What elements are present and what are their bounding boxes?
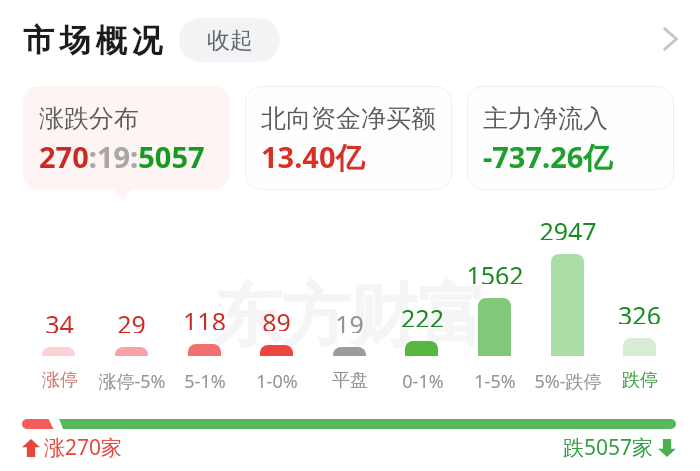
staticText: 2947: [539, 214, 597, 240]
staticText: 270:19:5057: [39, 137, 205, 176]
staticText: 涨停: [42, 369, 78, 392]
staticText: 1562: [466, 258, 524, 284]
button[interactable]: 收起: [179, 18, 280, 62]
staticText: 34: [45, 307, 74, 333]
staticText: 北向资金净买额: [261, 103, 436, 134]
staticText: 222: [401, 301, 444, 327]
button[interactable]: More: [649, 15, 691, 63]
staticText: 主力净流入: [483, 103, 608, 134]
staticText: 涨270家: [44, 433, 123, 462]
staticText: 326: [618, 298, 661, 324]
staticText: 东方财富: [214, 274, 486, 360]
staticText: 1-0%: [256, 369, 298, 394]
button[interactable]: 北向资金净买额: [245, 86, 452, 190]
staticText: 跌5057家: [563, 433, 654, 462]
staticText: 收起: [207, 26, 253, 55]
staticText: -737.26亿: [483, 137, 613, 177]
button[interactable]: 市场概况: [23, 21, 168, 60]
staticText: 13.40亿: [261, 137, 365, 177]
staticText: 19: [335, 307, 364, 333]
staticText: 29: [117, 307, 146, 333]
staticText: 1-5%: [474, 369, 516, 394]
staticText: 118: [183, 304, 226, 330]
button[interactable]: 涨跌分布: [23, 86, 230, 190]
button[interactable]: 主力净流入: [467, 86, 674, 190]
staticText: 涨跌分布: [39, 103, 139, 134]
staticText: 跌停: [622, 369, 658, 392]
staticText: 89: [262, 305, 291, 331]
staticText: 0-1%: [402, 369, 444, 394]
staticText: 平盘: [332, 369, 368, 392]
staticText: 5-1%: [184, 369, 226, 394]
staticText: 市场概况: [23, 21, 168, 60]
staticText: 涨停-5%: [98, 369, 166, 394]
staticText: 5%-跌停: [534, 369, 602, 394]
